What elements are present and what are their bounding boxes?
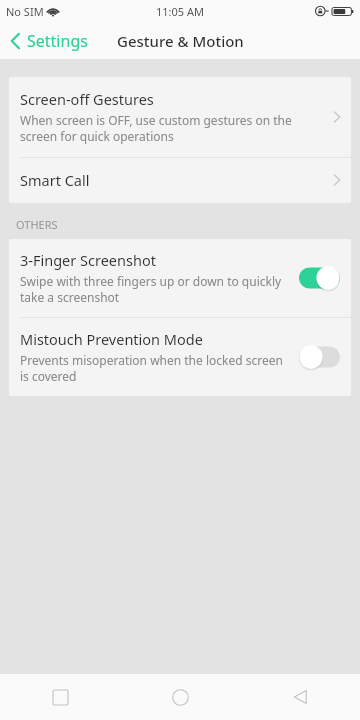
button[interactable]: Mistouch Prevention Mode <box>9 318 351 396</box>
button[interactable]: Settings <box>0 26 98 56</box>
staticText: Prevents misoperation when the locked sc… <box>20 352 285 384</box>
button[interactable]: Smart Call <box>9 158 351 203</box>
staticText: Swipe with three fingers up or down to q… <box>20 273 285 305</box>
button[interactable]: Recent apps <box>0 674 120 720</box>
button[interactable]: 3-Finger Screenshot <box>9 239 351 317</box>
staticText: 11:05 AM <box>156 4 204 19</box>
button[interactable]: Toggle on <box>299 266 340 290</box>
staticText: Screen-off Gestures <box>20 89 154 109</box>
staticText: OTHERS <box>16 217 58 232</box>
staticText: Gesture & Motion <box>117 31 244 51</box>
staticText: Settings <box>27 30 88 52</box>
staticText: 3-Finger Screenshot <box>20 250 156 270</box>
staticText: When screen is OFF, use custom gestures … <box>20 112 313 144</box>
staticText: Smart Call <box>20 170 90 190</box>
button[interactable]: Toggle off <box>299 345 340 369</box>
staticText: No SIM <box>6 4 44 19</box>
button[interactable]: Back <box>240 674 360 720</box>
button[interactable]: Screen-off Gestures <box>9 77 351 157</box>
button[interactable]: Home <box>120 674 240 720</box>
staticText: Mistouch Prevention Mode <box>20 329 203 349</box>
